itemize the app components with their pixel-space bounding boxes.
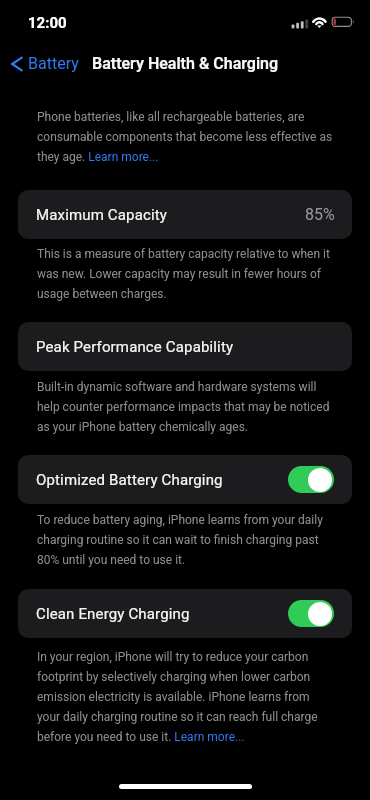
staticText: Clean Energy Charging [36,605,190,623]
button[interactable]: Peak Performance Capability [18,322,352,371]
staticText: Battery Health & Charging [92,54,279,73]
button[interactable]: Optimized Battery Charging [18,455,352,504]
button[interactable]: Maximum Capacity [18,190,352,239]
staticText: Built-in dynamic software and hardware s… [37,380,334,434]
button[interactable]: Toggle on [288,600,334,627]
staticText: Phone batteries, like all rechargeable b… [37,110,334,164]
staticText: 12:00 [28,14,67,32]
button[interactable]: Toggle on [288,466,334,493]
button[interactable]: Clean Energy Charging [18,589,352,638]
button[interactable]: Back to Battery [4,50,87,77]
staticText: This is a measure of battery capacity re… [37,247,334,301]
staticText: Optimized Battery Charging [36,471,223,489]
staticText: 85% [305,205,335,224]
staticText: To reduce battery aging, iPhone learns f… [37,513,334,567]
staticText: Maximum Capacity [36,206,168,224]
staticText: In your region, iPhone will try to reduc… [37,650,334,744]
staticText: Battery [28,54,79,73]
staticText: Peak Performance Capability [36,338,234,356]
